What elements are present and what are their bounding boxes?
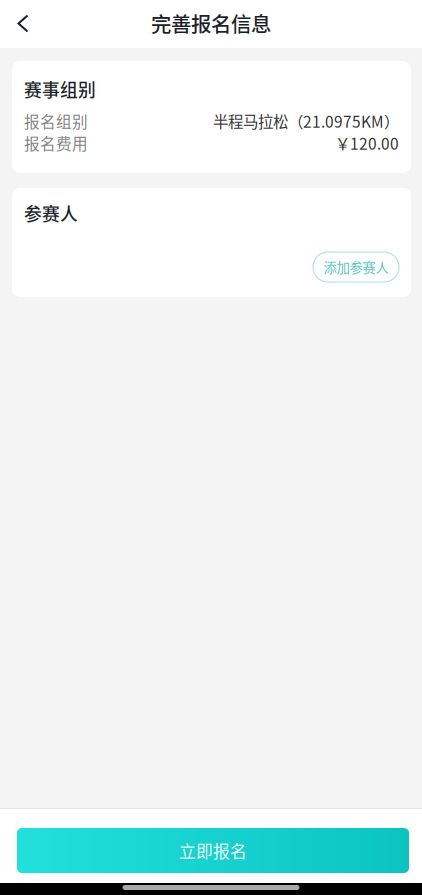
- staticText: 报名组别: [24, 110, 88, 132]
- staticText: 添加参赛人: [323, 257, 388, 277]
- staticText: 完善报名信息: [151, 8, 271, 38]
- staticText: 半程马拉松（21.0975KM）: [213, 110, 399, 132]
- staticText: 报名费用: [24, 132, 88, 154]
- button[interactable]: 立即报名: [17, 828, 409, 873]
- staticText: ￥120.00: [335, 132, 399, 154]
- staticText: 参赛人: [24, 200, 78, 226]
- staticText: 立即报名: [179, 838, 247, 863]
- button[interactable]: 添加参赛人: [313, 252, 399, 282]
- staticText: 赛事组别: [24, 76, 96, 102]
- button[interactable]: Back: [0, 0, 47, 48]
